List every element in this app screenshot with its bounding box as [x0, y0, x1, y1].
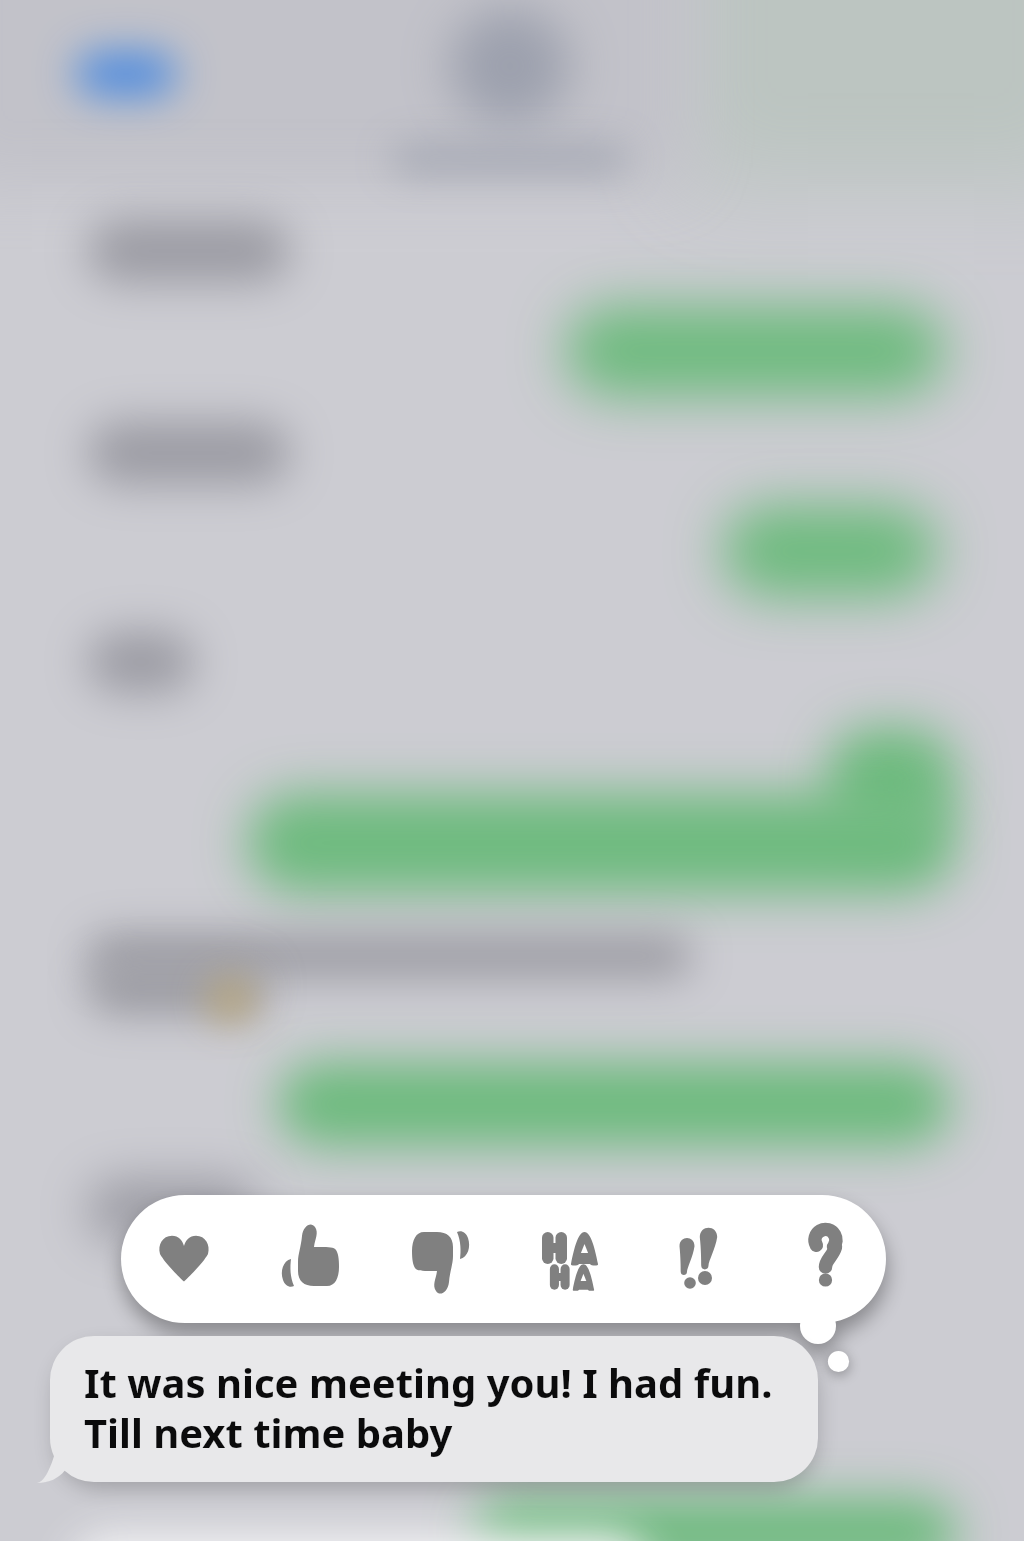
button[interactable]: Like [248, 1195, 375, 1323]
button[interactable]: Haha [502, 1195, 630, 1323]
staticText: It was nice meeting you! I had fun. Till… [84, 1355, 773, 1460]
button[interactable]: Emphasize [630, 1195, 758, 1323]
button[interactable]: It was nice meeting you! I had fun. Till… [38, 1336, 818, 1482]
button[interactable]: Dislike [375, 1195, 502, 1323]
button[interactable]: Question [758, 1195, 886, 1323]
button[interactable]: Love [121, 1195, 248, 1323]
